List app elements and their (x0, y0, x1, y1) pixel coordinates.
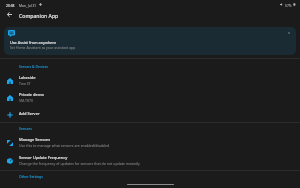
staticText: 20:58 (6, 3, 15, 7)
staticText: Change the frequency of updates for sens… (19, 161, 140, 166)
staticText: Sensor Update Frequency (19, 155, 68, 160)
button[interactable]: Manage Sensors (0, 137, 300, 152)
button[interactable]: Back (3, 8, 15, 20)
staticText: 57% (285, 3, 292, 7)
staticText: Other Settings (19, 174, 43, 179)
staticText: Two S7 (19, 81, 31, 86)
button[interactable]: Lakeside (0, 75, 300, 90)
staticText: Use Assist from anywhere (10, 40, 57, 45)
staticText: Use this to manage what sensors are enab… (19, 143, 110, 148)
staticText: Mon, Jul 31 (19, 3, 37, 7)
staticText: SM-T870 (19, 98, 34, 103)
button[interactable]: Add Server (0, 111, 300, 120)
staticText: Manage Sensors (19, 137, 51, 142)
staticText: Private demo (19, 92, 44, 97)
button[interactable]: Dismiss (285, 29, 293, 37)
staticText: Lakeside (19, 75, 36, 80)
button[interactable]: Use Assist from anywhere (4, 27, 296, 55)
staticText: Set Home Assistant as your assistant app (10, 45, 76, 50)
button[interactable]: Sensor Update Frequency (0, 155, 300, 170)
button[interactable]: Private demo (0, 92, 300, 107)
staticText: Add Server (19, 111, 40, 116)
staticText: Sensors (19, 126, 32, 131)
staticText: Companion App (19, 12, 59, 19)
staticText: Servers & Devices (19, 64, 49, 69)
